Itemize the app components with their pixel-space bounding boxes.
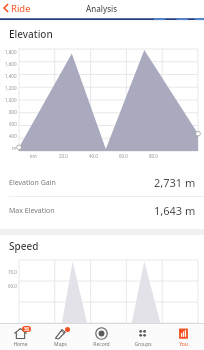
staticText: Groups bbox=[134, 341, 152, 348]
staticText: 1,200 bbox=[5, 85, 17, 91]
staticText: Elevation bbox=[9, 27, 53, 41]
staticText: 2,731 m bbox=[154, 175, 196, 190]
button[interactable]: Elevation Gain bbox=[0, 169, 204, 196]
staticText: Elevation Gain bbox=[9, 178, 56, 188]
staticText: 60.0 bbox=[8, 283, 17, 289]
staticText: 20.0 bbox=[59, 153, 68, 159]
staticText: 30 bbox=[24, 326, 30, 332]
staticText: 1,643 m bbox=[154, 203, 196, 218]
staticText: You bbox=[179, 341, 188, 348]
staticText: Analysis bbox=[86, 3, 118, 14]
button[interactable]: Maps bbox=[40, 324, 81, 350]
button[interactable]: Home bbox=[0, 324, 40, 350]
button[interactable]: Ride bbox=[0, 0, 35, 16]
staticText: Home bbox=[13, 341, 28, 348]
staticText: 80.0 bbox=[149, 153, 158, 159]
button[interactable]: Max Elevation bbox=[0, 197, 204, 224]
staticText: Speed bbox=[9, 239, 39, 253]
staticText: Max Elevation bbox=[9, 206, 55, 216]
staticText: km bbox=[30, 153, 37, 159]
staticText: 400 bbox=[9, 133, 17, 139]
staticText: 1,400 bbox=[5, 73, 17, 79]
staticText: 1,800 bbox=[5, 49, 17, 55]
button[interactable]: You bbox=[163, 324, 204, 350]
staticText: 70.0 bbox=[8, 269, 17, 275]
staticText: 40.0 bbox=[89, 153, 98, 159]
staticText: Ride bbox=[11, 2, 31, 14]
staticText: 600 bbox=[9, 121, 17, 127]
staticText: 800 bbox=[9, 109, 17, 115]
staticText: 1,600 bbox=[5, 61, 17, 67]
staticText: 1,000 bbox=[5, 97, 17, 103]
staticText: 60.0 bbox=[119, 153, 128, 159]
staticText: m bbox=[12, 145, 17, 151]
staticText: Record bbox=[93, 341, 110, 348]
button[interactable]: Record bbox=[81, 324, 122, 350]
button[interactable]: Groups bbox=[122, 324, 163, 350]
staticText: Maps bbox=[54, 341, 67, 348]
